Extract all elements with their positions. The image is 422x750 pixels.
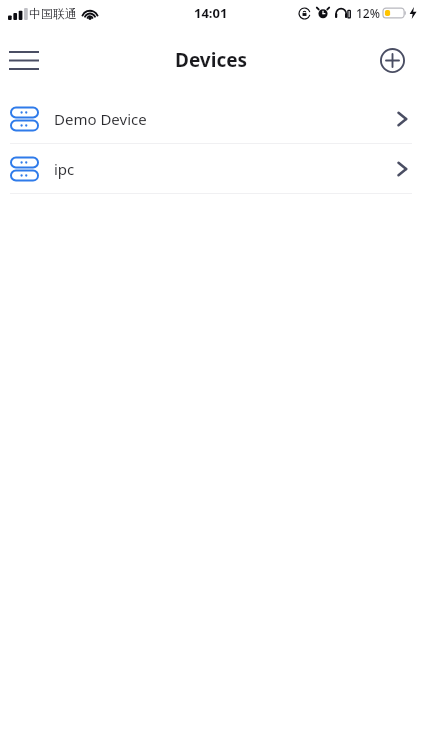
- staticText: 12%: [356, 5, 380, 21]
- staticText: Demo Device: [54, 109, 147, 129]
- staticText: 中国联通: [29, 6, 77, 21]
- staticText: ipc: [54, 159, 75, 179]
- button[interactable]: Open navigation menu: [2, 38, 46, 82]
- button[interactable]: Add device: [370, 38, 414, 82]
- staticText: Devices: [175, 47, 248, 73]
- button[interactable]: ipc: [0, 144, 422, 193]
- button[interactable]: Demo Device: [0, 94, 422, 143]
- staticText: 14:01: [194, 4, 228, 22]
